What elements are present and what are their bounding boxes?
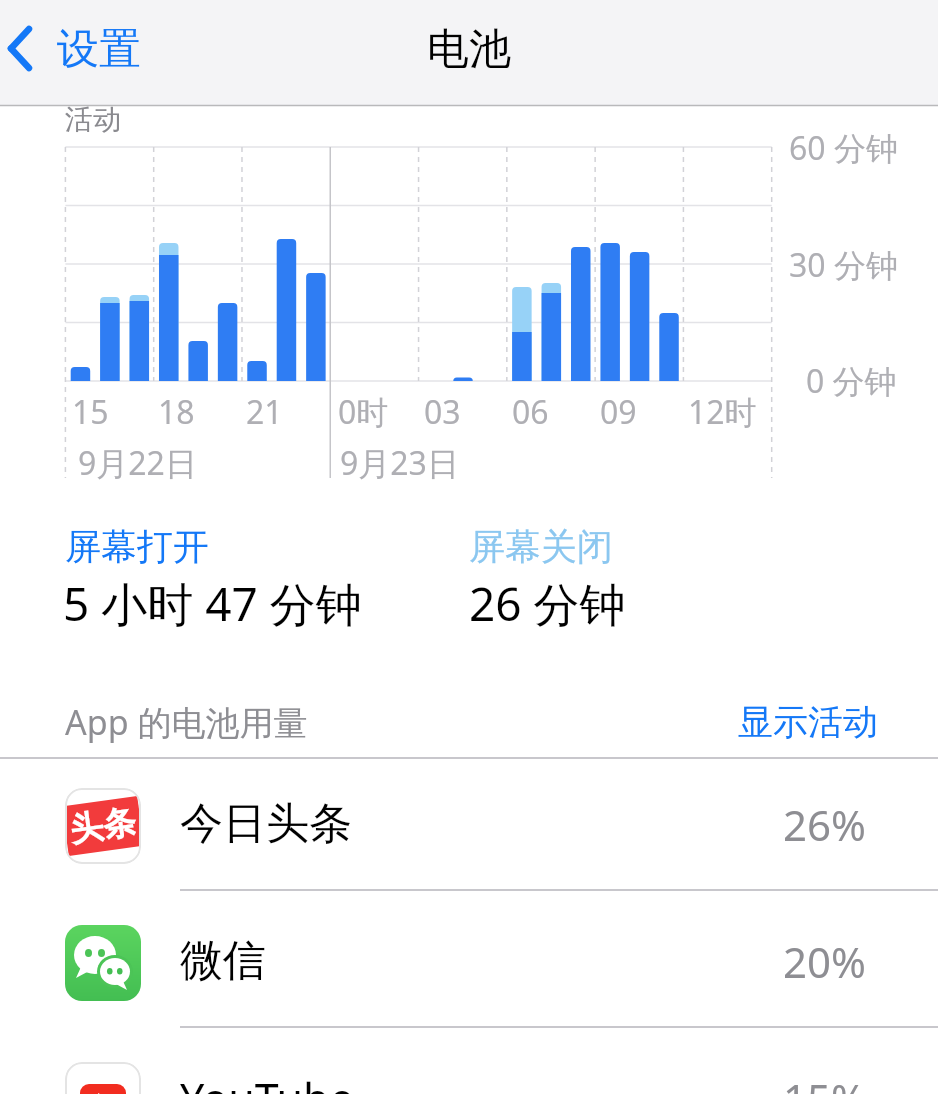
- staticText: 头条: [67, 801, 139, 851]
- staticText: 12时: [688, 390, 757, 434]
- staticText: 9月23日: [340, 441, 459, 485]
- staticText: 显示活动: [738, 700, 878, 744]
- button[interactable]: 微信: [0, 895, 938, 1032]
- staticText: 26%: [783, 796, 866, 853]
- button[interactable]: YouTube: [0, 1032, 938, 1094]
- staticText: 屏幕打开: [65, 524, 209, 569]
- staticText: 18: [158, 390, 195, 434]
- staticText: 0时: [338, 390, 389, 434]
- staticText: 26 分钟: [469, 572, 626, 635]
- staticText: 活动: [65, 102, 121, 137]
- staticText: 屏幕关闭: [469, 524, 613, 569]
- staticText: 9月22日: [78, 441, 197, 485]
- staticText: 60 分钟: [789, 126, 898, 170]
- staticText: 03: [424, 390, 461, 434]
- staticText: App 的电池用量: [65, 699, 308, 745]
- staticText: 06: [512, 390, 549, 434]
- staticText: 30 分钟: [789, 243, 898, 287]
- staticText: 设置: [57, 23, 141, 76]
- staticText: 21: [246, 390, 283, 434]
- staticText: 09: [600, 390, 637, 434]
- staticText: 20%: [783, 933, 866, 990]
- staticText: 15%: [783, 1070, 866, 1094]
- staticText: 今日头条: [180, 797, 352, 851]
- button[interactable]: 设置: [57, 8, 187, 90]
- staticText: 15: [72, 390, 109, 434]
- staticText: 电池: [427, 23, 511, 76]
- button[interactable]: 显示活动: [378, 687, 878, 757]
- button[interactable]: 头条: [0, 758, 938, 895]
- staticText: YouTube: [180, 1069, 354, 1094]
- staticText: 5 小时 47 分钟: [63, 572, 362, 635]
- staticText: 微信: [180, 934, 266, 988]
- staticText: 0 分钟: [806, 359, 897, 403]
